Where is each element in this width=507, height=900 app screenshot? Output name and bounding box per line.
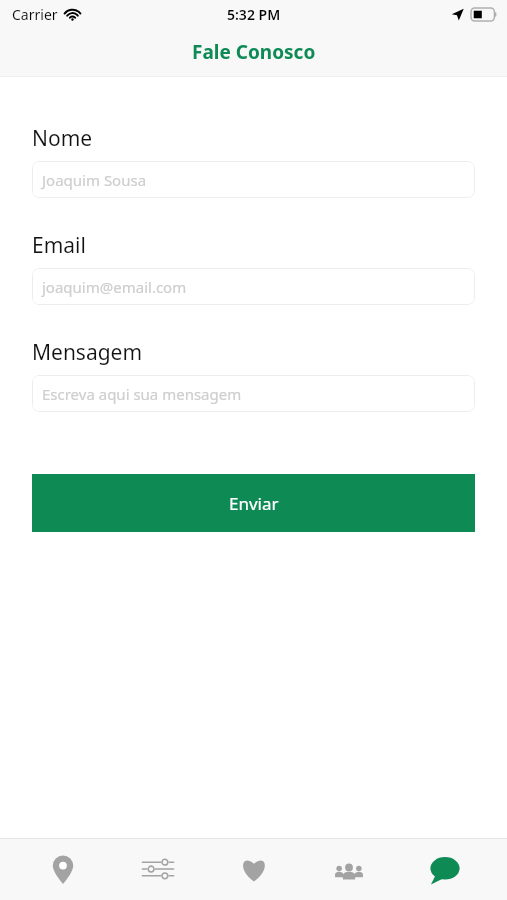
staticText: Nome — [32, 124, 93, 153]
staticText: Mensagem — [32, 338, 143, 367]
staticText: Joaquim Sousa — [42, 170, 147, 190]
staticText: Carrier — [12, 5, 58, 24]
button[interactable]: Favorites — [221, 838, 287, 900]
button[interactable]: Filters — [125, 838, 191, 900]
button[interactable]: joaquim@email.com — [32, 268, 475, 305]
button[interactable]: Joaquim Sousa — [32, 161, 475, 198]
button[interactable]: Chat — [412, 838, 478, 900]
staticText: Enviar — [229, 492, 279, 515]
button[interactable]: Escreva aqui sua mensagem — [32, 375, 475, 412]
button[interactable]: Enviar — [32, 474, 475, 532]
button[interactable]: Community — [316, 838, 382, 900]
staticText: 5:32 PM — [227, 5, 281, 24]
staticText: joaquim@email.com — [42, 277, 187, 297]
button[interactable]: Location — [30, 838, 96, 900]
staticText: Email — [32, 231, 86, 260]
staticText: Fale Conosco — [192, 39, 316, 65]
staticText: Escreva aqui sua mensagem — [42, 384, 242, 404]
